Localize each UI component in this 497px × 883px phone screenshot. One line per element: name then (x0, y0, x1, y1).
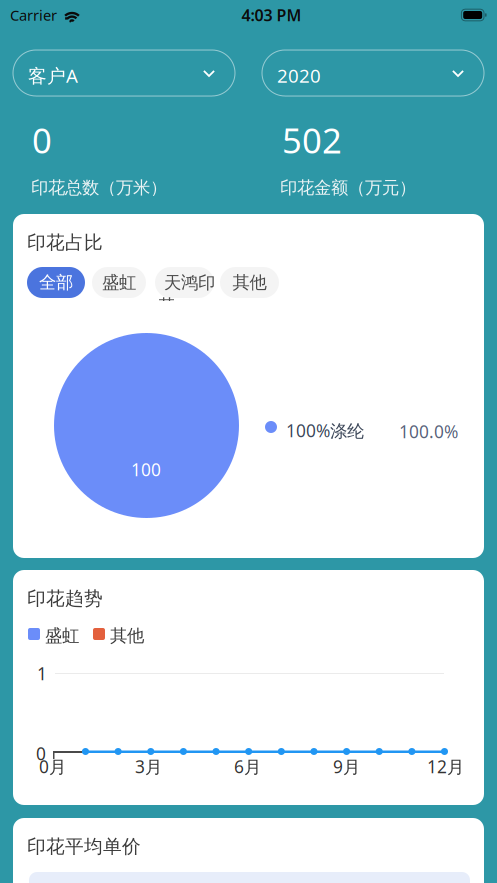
staticText: 印花平均单价 (27, 835, 141, 858)
staticText: 12月 (427, 755, 464, 778)
staticText: 100%涤纶 (286, 419, 364, 442)
staticText: 502 (282, 117, 342, 163)
staticText: 0月 (39, 755, 66, 778)
staticText: 4:03 PM (241, 4, 301, 26)
staticText: 100.0% (399, 420, 458, 443)
staticText: 100 (131, 458, 161, 481)
staticText: 其他 (232, 272, 266, 293)
staticText: 客户A (28, 63, 78, 88)
staticText: 9月 (333, 755, 360, 778)
staticText: 花 (158, 295, 175, 316)
staticText: 盛虹 (102, 272, 136, 293)
staticText: 2020 (277, 63, 321, 88)
staticText: 印花趋势 (27, 587, 103, 610)
staticText: 天鸿印 (164, 272, 215, 293)
button[interactable]: 客户A (13, 50, 235, 96)
staticText: 印花金额（万元） (280, 177, 416, 198)
staticText: 3月 (135, 755, 162, 778)
button[interactable]: 2020 (262, 50, 484, 96)
staticText: 6月 (234, 755, 261, 778)
button[interactable]: 盛虹 (92, 267, 146, 298)
staticText: 其他 (110, 625, 144, 646)
button[interactable]: 其他 (220, 267, 279, 298)
staticText: 印花占比 (27, 231, 103, 254)
staticText: 1 (37, 662, 47, 685)
staticText: 0 (32, 117, 52, 163)
staticText: 0 (36, 742, 46, 765)
staticText: 印花总数（万米） (31, 177, 167, 198)
staticText: 盛虹 (45, 625, 79, 646)
button[interactable]: 全部 (27, 267, 85, 298)
staticText: Carrier (10, 5, 57, 25)
staticText: 全部 (39, 272, 73, 293)
